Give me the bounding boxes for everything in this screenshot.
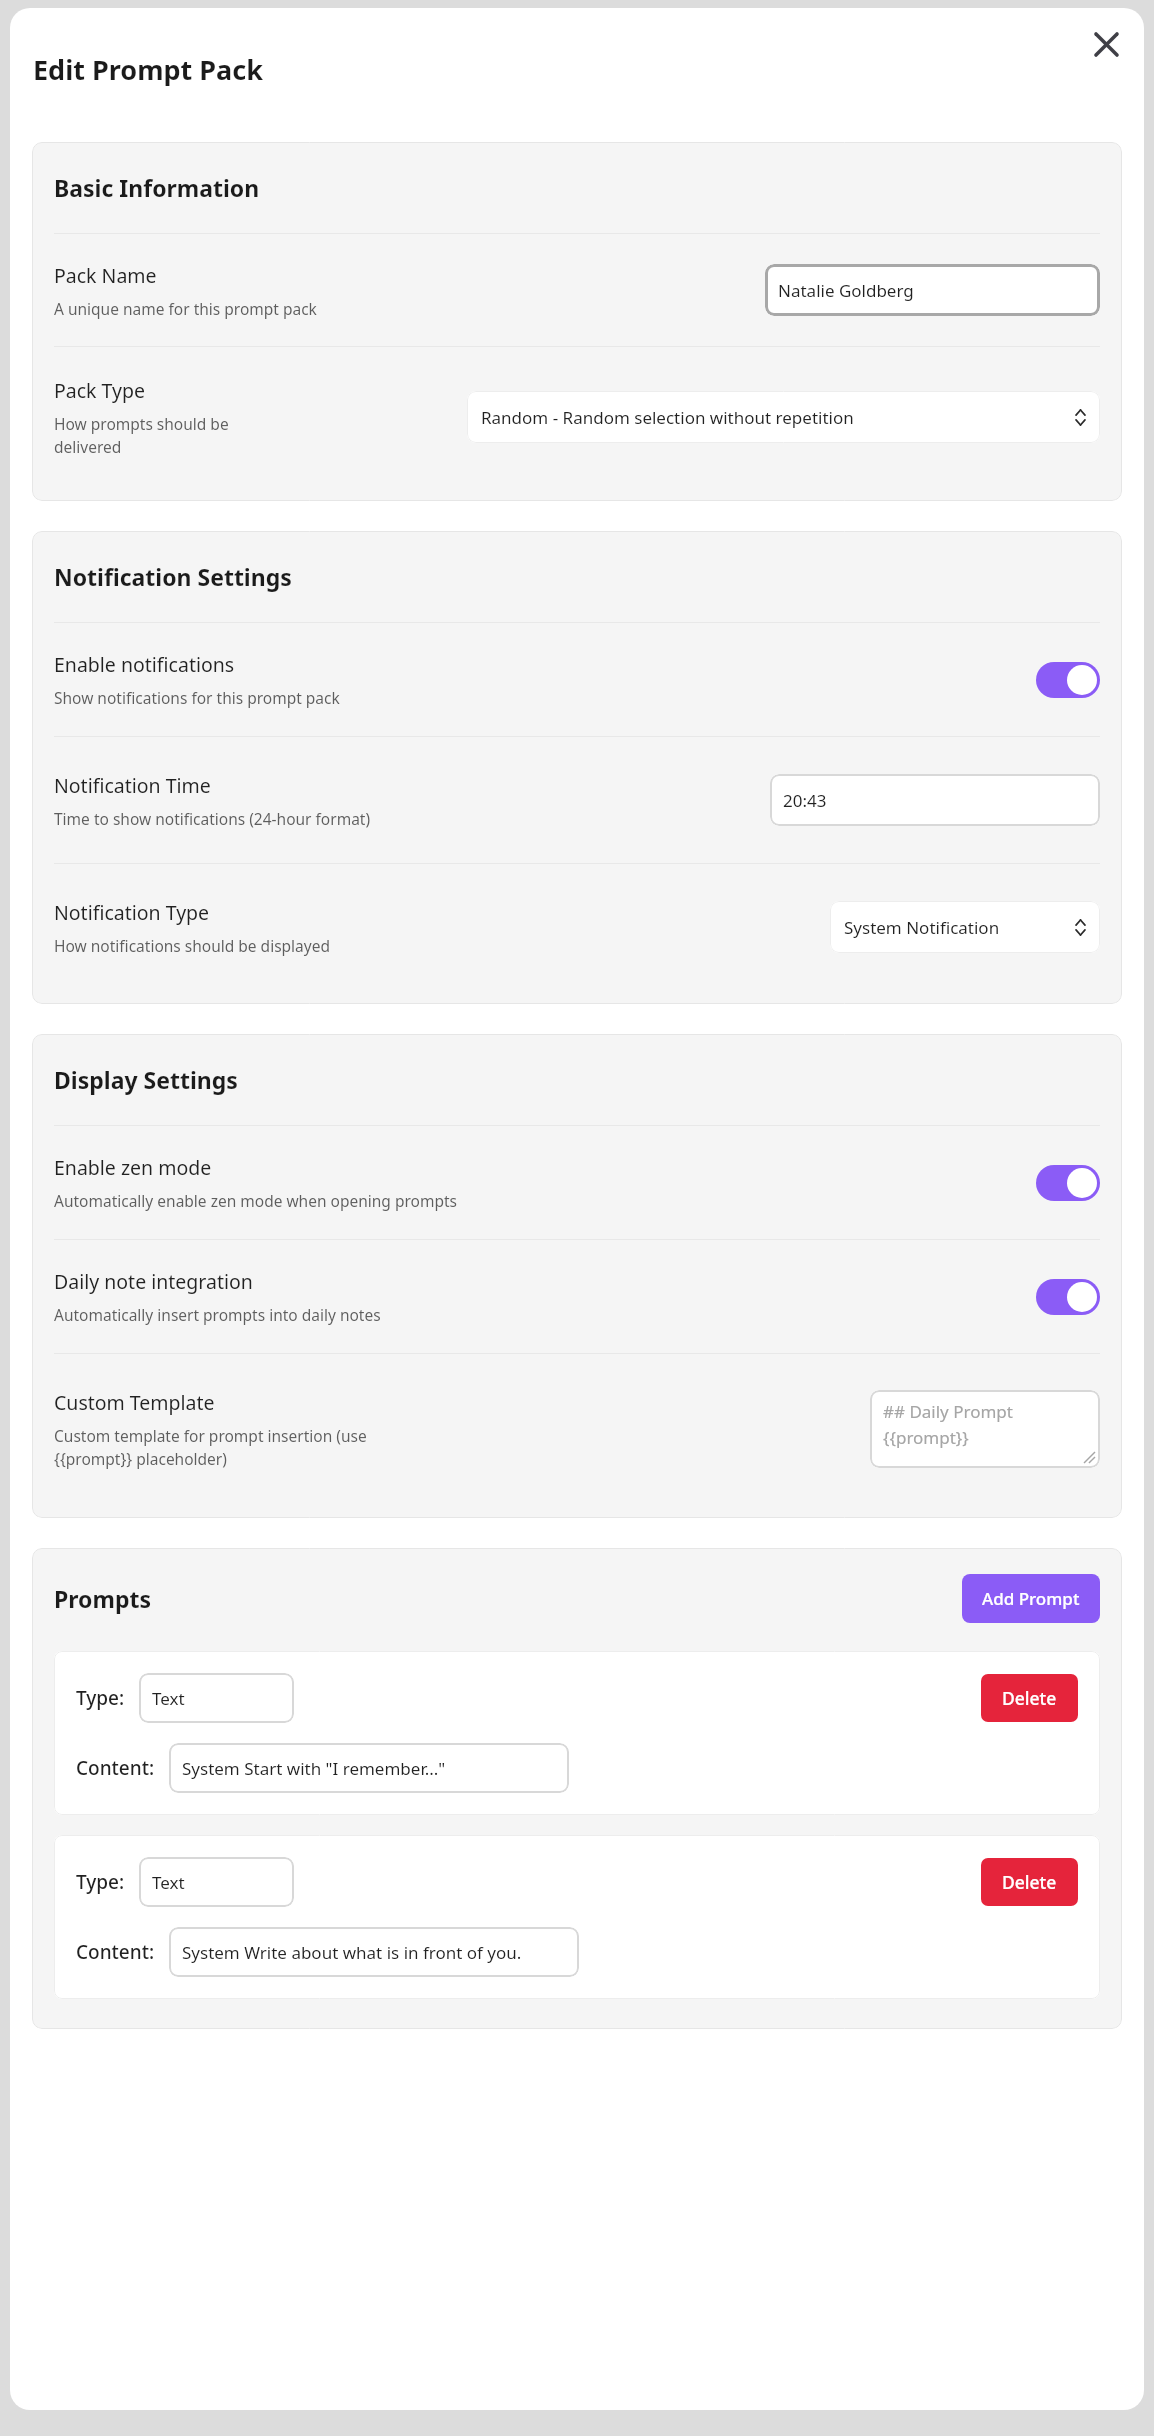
- staticText: #: [1110, 380, 1125, 410]
- staticText: System Start with "I remember...": [182, 1757, 446, 1780]
- staticText: Enable zen mode: [54, 1154, 212, 1181]
- staticText: Prompts: [54, 1583, 962, 1614]
- staticText: Notification Type: [54, 899, 210, 926]
- staticText: System Write about what is in front of y…: [182, 1941, 522, 1964]
- staticText: Daily note integration: [54, 1268, 253, 1295]
- staticText: Automatically enable zen mode when openi…: [54, 1190, 457, 1211]
- staticText: Content:: [76, 1755, 155, 1781]
- button[interactable]: Toggle: [1036, 1279, 1100, 1315]
- button[interactable]: Random - Random selection without repeti…: [467, 391, 1100, 443]
- staticText: Notification Settings: [54, 561, 292, 592]
- staticText: Add Prompt: [982, 1587, 1080, 1610]
- staticText: Show notifications for this prompt pack: [54, 687, 340, 708]
- button[interactable]: Close: [1084, 22, 1128, 66]
- staticText: How notifications should be displayed: [54, 935, 330, 956]
- staticText: Delete: [1002, 1870, 1057, 1894]
- staticText: Random - Random selection without repeti…: [481, 406, 1069, 429]
- staticText: Automatically insert prompts into daily …: [54, 1304, 381, 1325]
- staticText: Notification Time: [54, 772, 211, 799]
- button[interactable]: 20:43: [770, 774, 1100, 826]
- button[interactable]: Toggle: [1036, 662, 1100, 698]
- staticText: Natalie Goldberg: [778, 279, 914, 302]
- staticText: How prompts should be delivered: [54, 413, 229, 458]
- button[interactable]: Toggle: [1036, 1165, 1100, 1201]
- staticText: T: [1110, 1133, 1122, 1160]
- staticText: Custom template for prompt insertion (us…: [54, 1425, 367, 1470]
- staticText: Enable notifications: [54, 651, 235, 678]
- staticText: A: [1110, 1030, 1127, 1063]
- staticText: D: [1110, 280, 1127, 310]
- staticText: Pack Type: [54, 377, 145, 404]
- button[interactable]: ## Daily Prompt {{prompt}}: [870, 1390, 1100, 1468]
- staticText: Delete: [1002, 1686, 1057, 1710]
- staticText: Type:: [76, 1685, 125, 1711]
- staticText: Time to show notifications (24-hour form…: [54, 808, 371, 829]
- button[interactable]: Delete: [981, 1674, 1078, 1722]
- staticText: System Notification: [844, 916, 1069, 939]
- button[interactable]: System Write about what is in front of y…: [169, 1927, 579, 1977]
- staticText: Text: [152, 1871, 185, 1894]
- button[interactable]: System Notification: [830, 901, 1100, 953]
- staticText: Text: [152, 1687, 185, 1710]
- staticText: Edit Prompt Pack: [33, 51, 263, 88]
- staticText: Custom Template: [54, 1389, 215, 1416]
- button[interactable]: Text: [139, 1673, 294, 1723]
- button[interactable]: Natalie Goldberg: [765, 264, 1100, 316]
- staticText: Pack Name: [54, 262, 157, 289]
- staticText: Content:: [76, 1939, 155, 1965]
- staticText: 20:43: [783, 789, 827, 812]
- button[interactable]: Add Prompt: [962, 1574, 1100, 1623]
- staticText: Type:: [76, 1869, 125, 1895]
- button[interactable]: System Start with "I remember...": [169, 1743, 569, 1793]
- staticText: A unique name for this prompt pack: [54, 298, 317, 319]
- staticText: Basic Information: [54, 172, 260, 203]
- button[interactable]: Text: [139, 1857, 294, 1907]
- button[interactable]: Delete: [981, 1858, 1078, 1906]
- staticText: ## Daily Prompt {{prompt}}: [883, 1400, 1013, 1449]
- staticText: Display Settings: [54, 1064, 238, 1095]
